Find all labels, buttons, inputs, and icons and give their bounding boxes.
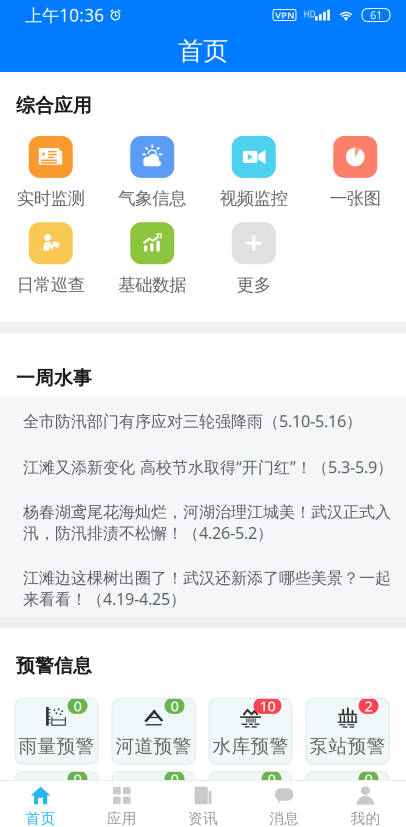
staticText: 应用 [107, 809, 137, 827]
staticText: 上午10:36 [25, 3, 104, 26]
staticText: 首页 [26, 809, 56, 827]
staticText: 消息 [269, 809, 299, 827]
button[interactable]: 2 [306, 698, 389, 764]
staticText: 2 [364, 696, 372, 716]
staticText: 水质预警 [115, 808, 191, 827]
staticText: 江滩又添新变化 高校节水取得“开门红”！（5.3-5.9） [23, 456, 393, 478]
staticText: 10 [259, 696, 275, 716]
button[interactable]: 0 [112, 771, 195, 827]
staticText: 一张图 [330, 188, 381, 209]
button[interactable]: 0 [306, 771, 389, 827]
staticText: 0 [170, 696, 178, 716]
staticText: 0 [170, 769, 178, 789]
staticText: 全市防汛部门有序应对三轮强降雨（5.10-5.16） [23, 410, 362, 432]
staticText: 江滩边这棵树出圈了！武汉还新添了哪些美景？一起来看看！（4.19-4.25） [23, 568, 391, 609]
staticText: 河道预警 [115, 735, 191, 758]
staticText: 杨春湖鸢尾花海灿烂，河湖治理江城美！武汉正式入汛，防汛排渍不松懈！（4.26-5… [23, 502, 391, 543]
staticText: 0 [267, 769, 275, 789]
button[interactable]: 全市防汛部门有序应对三轮强降雨（5.10-5.16） [0, 395, 406, 441]
button[interactable]: 一张图 [304, 136, 406, 209]
button[interactable]: 基础数据 [101, 222, 203, 295]
staticText: 水库预警 [212, 735, 288, 758]
button[interactable]: 气象信息 [101, 136, 203, 209]
staticText: 雨量预警 [18, 735, 94, 758]
button[interactable]: 视频监控 [203, 136, 304, 209]
staticText: 首页 [178, 35, 228, 66]
staticText: 实时监测 [17, 188, 85, 209]
staticText: 基础数据 [118, 274, 186, 295]
button[interactable]: 日常巡查 [0, 222, 101, 295]
staticText: 我的 [350, 809, 380, 827]
staticText: VPN [275, 9, 294, 21]
button[interactable]: 杨春湖鸢尾花海灿烂，河湖治理江城美！武汉正式入汛，防汛排渍不松懈！（4.26-5… [0, 487, 406, 553]
button[interactable]: 我的 [325, 785, 406, 827]
staticText: 0 [364, 769, 372, 789]
staticText: 其他预警 [309, 808, 385, 827]
staticText: HD [303, 9, 315, 20]
staticText: 0 [73, 769, 81, 789]
button[interactable]: 应用 [81, 785, 162, 827]
staticText: 综合应用 [16, 94, 92, 117]
staticText: 预警信息 [16, 654, 92, 677]
button[interactable]: 江滩边这棵树出圈了！武汉还新添了哪些美景？一起来看看！（4.19-4.25） [0, 553, 406, 616]
staticText: 工情预警 [18, 808, 94, 827]
staticText: 日常巡查 [17, 274, 85, 295]
button[interactable]: 资讯 [162, 785, 244, 827]
button[interactable]: 实时监测 [0, 136, 101, 209]
staticText: 视频监控 [220, 188, 288, 209]
button[interactable]: 江滩又添新变化 高校节水取得“开门红”！（5.3-5.9） [0, 441, 406, 487]
button[interactable]: 0 [112, 698, 195, 764]
button[interactable]: 消息 [244, 785, 325, 827]
staticText: 资讯 [188, 809, 218, 827]
staticText: 气象信息 [118, 188, 186, 209]
staticText: 更多 [237, 274, 271, 295]
button[interactable]: 0 [209, 771, 292, 827]
button[interactable]: 0 [15, 771, 98, 827]
staticText: 泵站预警 [309, 735, 385, 758]
button[interactable]: 0 [15, 698, 98, 764]
button[interactable]: 10 [209, 698, 292, 764]
button[interactable]: 更多 [203, 222, 304, 295]
staticText: 61 [370, 8, 382, 22]
button[interactable]: 首页 [0, 785, 81, 827]
staticText: 0 [73, 696, 81, 716]
staticText: 积水预警 [212, 808, 288, 827]
staticText: 一周水事 [16, 366, 92, 389]
